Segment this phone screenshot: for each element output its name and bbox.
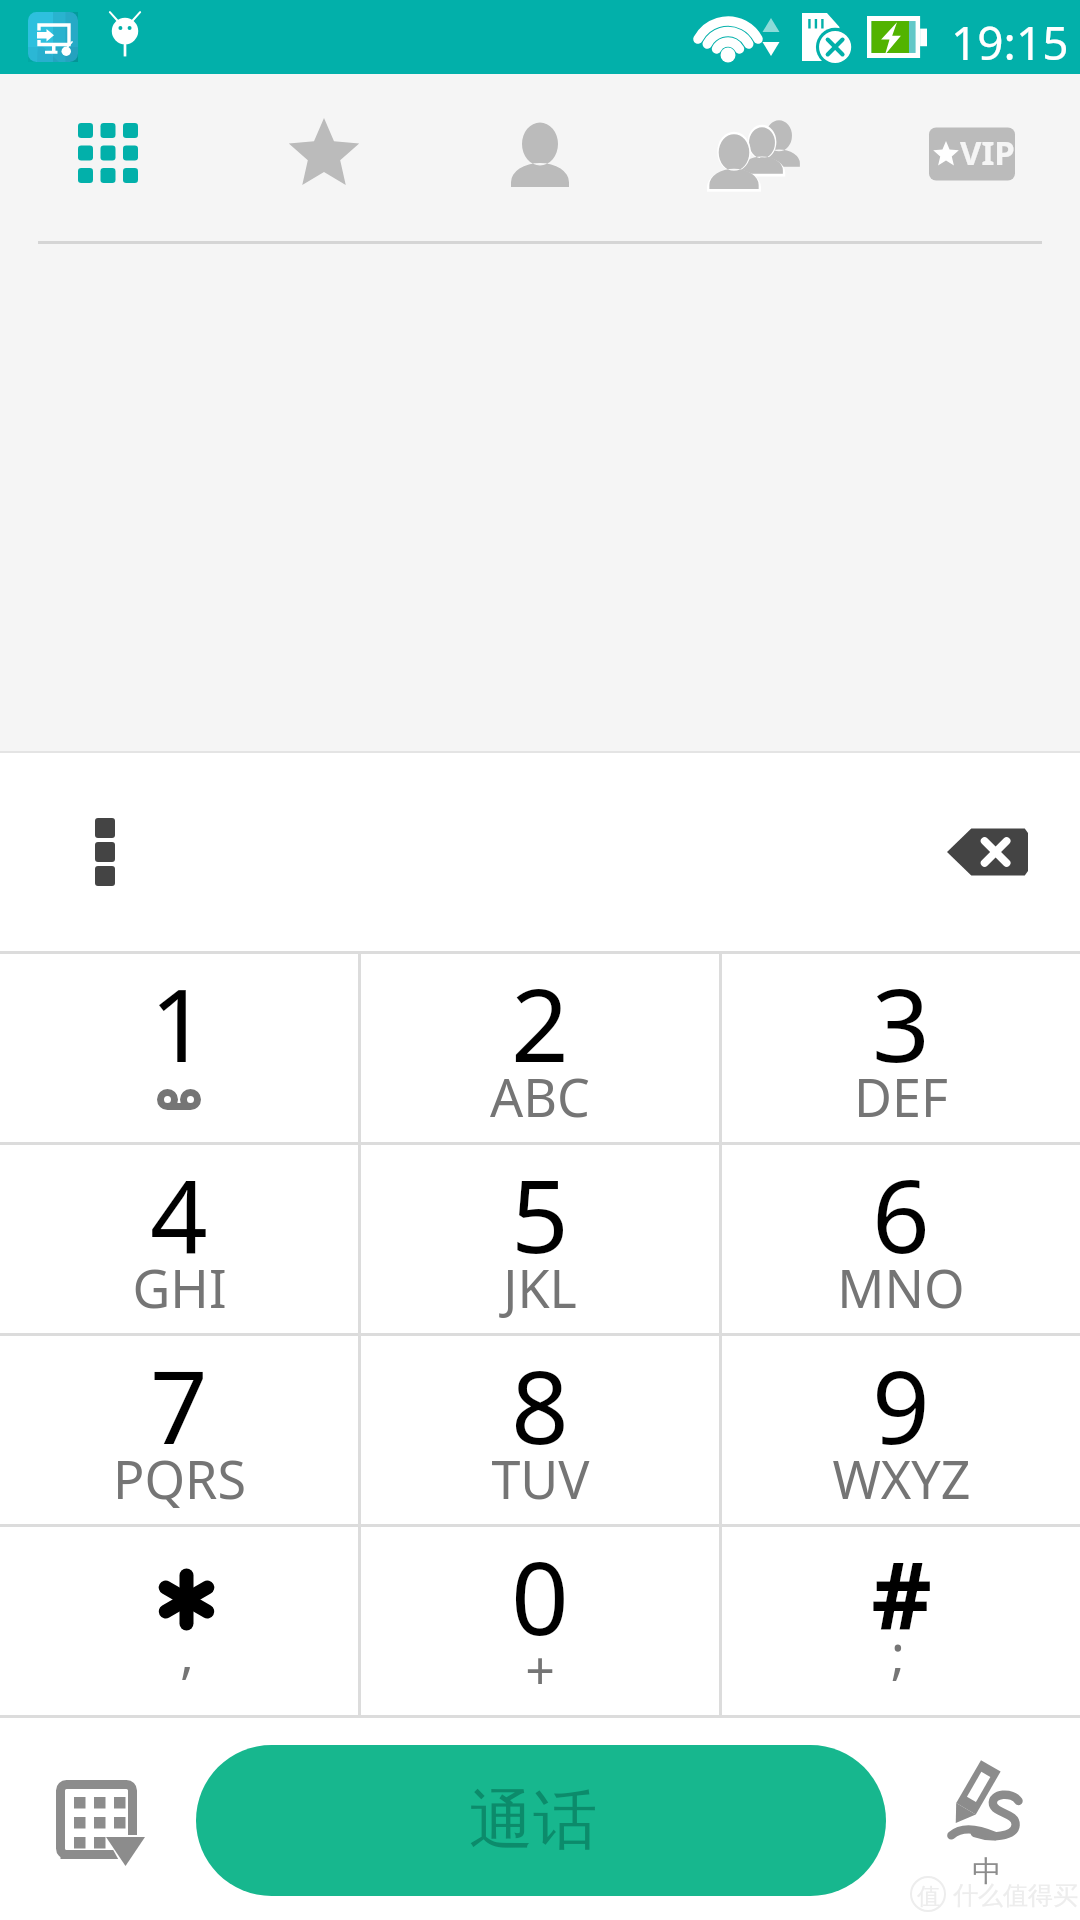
staticText: 9 — [872, 1336, 930, 1474]
staticText: TUV — [491, 1443, 590, 1514]
button[interactable]: 1 — [0, 954, 358, 1142]
button[interactable]: # — [722, 1527, 1080, 1715]
staticText: 1 — [150, 954, 208, 1092]
button[interactable]: More options — [50, 787, 160, 917]
staticText: 4 — [150, 1145, 208, 1283]
staticText: 0 — [511, 1527, 569, 1665]
staticText: PQRS — [113, 1443, 246, 1514]
staticText: 8 — [511, 1336, 569, 1474]
button[interactable]: Handwriting input — [930, 1751, 1040, 1891]
staticText: JKL — [503, 1252, 577, 1323]
staticText: 5 — [511, 1145, 569, 1283]
button[interactable]: Groups tab — [648, 74, 864, 246]
staticText: 值 — [917, 1882, 940, 1911]
staticText: ; — [891, 1617, 905, 1688]
button[interactable]: VIP tab — [864, 74, 1080, 246]
button[interactable]: 8 — [361, 1336, 719, 1524]
staticText: MNO — [837, 1252, 965, 1323]
staticText: DEF — [854, 1061, 948, 1132]
staticText: 7 — [150, 1336, 208, 1474]
button[interactable]: Dialpad tab — [0, 74, 216, 246]
staticText: GHI — [132, 1252, 227, 1323]
button[interactable]: Backspace — [922, 787, 1052, 917]
button[interactable]: 4 — [0, 1145, 358, 1333]
staticText: WXYZ — [832, 1443, 971, 1514]
button[interactable]: 0 — [361, 1527, 719, 1715]
staticText: 3 — [872, 954, 930, 1092]
button[interactable]: 9 — [722, 1336, 1080, 1524]
button[interactable]: 3 — [722, 954, 1080, 1142]
button[interactable]: Hide keypad — [26, 1750, 166, 1890]
button[interactable]: Favorites tab — [216, 74, 432, 246]
staticText: + — [525, 1634, 555, 1705]
staticText: 6 — [872, 1145, 930, 1283]
button[interactable]: 5 — [361, 1145, 719, 1333]
staticText: # — [871, 1530, 932, 1658]
button[interactable]: , — [0, 1527, 358, 1715]
button[interactable]: 2 — [361, 954, 719, 1142]
button[interactable]: 通话 — [196, 1745, 886, 1896]
staticText: 19:15 — [951, 11, 1069, 74]
staticText: ABC — [490, 1061, 590, 1132]
button[interactable]: 7 — [0, 1336, 358, 1524]
staticText: 什么值得买 — [953, 1880, 1078, 1911]
staticText: 2 — [511, 954, 569, 1092]
button[interactable]: 6 — [722, 1145, 1080, 1333]
staticText: 中 — [972, 1853, 1001, 1890]
button[interactable]: Contacts tab — [432, 74, 648, 246]
staticText: VIP — [960, 130, 1015, 175]
staticText: 通话 — [469, 1780, 597, 1861]
staticText: , — [180, 1617, 194, 1688]
